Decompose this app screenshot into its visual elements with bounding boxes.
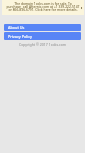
staticText: About Us — [8, 25, 25, 30]
staticText: Privacy Policy — [8, 34, 32, 39]
staticText: The domain 1coks.com is for sale. To — [2, 1, 84, 5]
other: More details — [80, 6, 83, 10]
staticText: purchase, call Afternic.com at +1 339-22… — [2, 4, 84, 8]
staticText: or 866-836-6791. Click here for more det… — [2, 7, 84, 11]
button[interactable]: The domain 1coks.com is for sale. To — [2, 0, 84, 15]
staticText: Copyright © 2017 1coks.com — [0, 42, 85, 47]
button[interactable]: Privacy Policy — [4, 32, 81, 40]
button[interactable]: About Us — [4, 24, 81, 31]
